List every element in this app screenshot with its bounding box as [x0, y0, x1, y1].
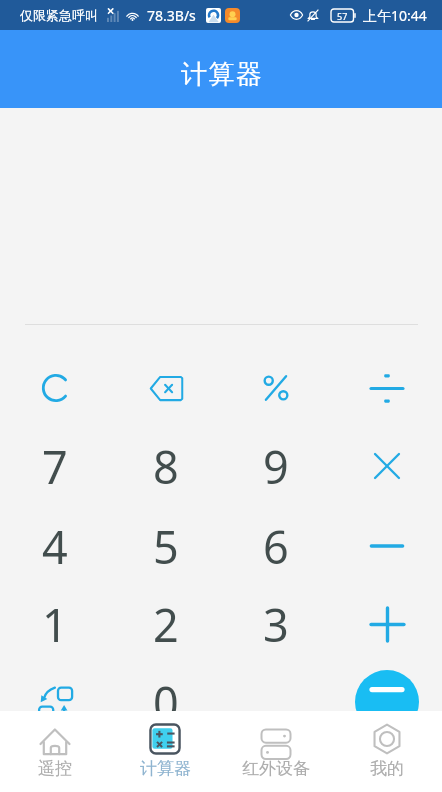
button[interactable]: 红外设备 [220, 711, 331, 792]
button[interactable]: 计算器 [110, 711, 220, 792]
staticText: 0 [153, 672, 179, 733]
button[interactable]: 2 [118, 585, 214, 663]
staticText: 78.3B/s [147, 6, 196, 25]
staticText: 红外设备 [242, 758, 310, 779]
staticText: 2 [153, 594, 179, 655]
button[interactable]: Divide [339, 349, 435, 427]
staticText: 3 [263, 594, 289, 655]
button[interactable]: 8 [118, 427, 214, 505]
button[interactable]: Clear [7, 349, 103, 427]
button[interactable]: 9 [228, 427, 324, 505]
staticText: 计算器 [181, 58, 264, 91]
staticText: 上午10:44 [363, 6, 427, 25]
button[interactable]: Minus [339, 507, 435, 585]
staticText: 我的 [370, 758, 404, 779]
button[interactable]: Percent [228, 349, 324, 427]
button[interactable]: Backspace [118, 349, 214, 427]
button[interactable]: Unit convert [7, 663, 103, 741]
button[interactable]: 5 [118, 507, 214, 585]
staticText: 7 [42, 436, 68, 497]
button[interactable]: . [228, 663, 324, 741]
button[interactable]: Multiply [339, 427, 435, 505]
staticText: 8 [153, 436, 179, 497]
staticText: 计算器 [140, 758, 191, 779]
button[interactable]: 1 [7, 585, 103, 663]
button[interactable]: Equals [355, 670, 419, 734]
button[interactable]: Plus [339, 585, 435, 663]
button[interactable]: 3 [228, 585, 324, 663]
button[interactable]: 0 [118, 663, 214, 741]
staticText: . [270, 672, 283, 733]
button[interactable]: 6 [228, 507, 324, 585]
staticText: 遥控 [38, 758, 72, 779]
staticText: 5 [153, 516, 179, 577]
staticText: 4 [42, 516, 68, 577]
button[interactable]: 4 [7, 507, 103, 585]
button[interactable]: 我的 [331, 711, 442, 792]
staticText: 仅限紧急呼叫 [20, 7, 98, 23]
staticText: 9 [263, 436, 289, 497]
button[interactable]: 遥控 [0, 711, 110, 792]
staticText: 6 [263, 516, 289, 577]
staticText: 1 [42, 594, 68, 655]
staticText: 57 [337, 10, 348, 22]
button[interactable]: 7 [7, 427, 103, 505]
